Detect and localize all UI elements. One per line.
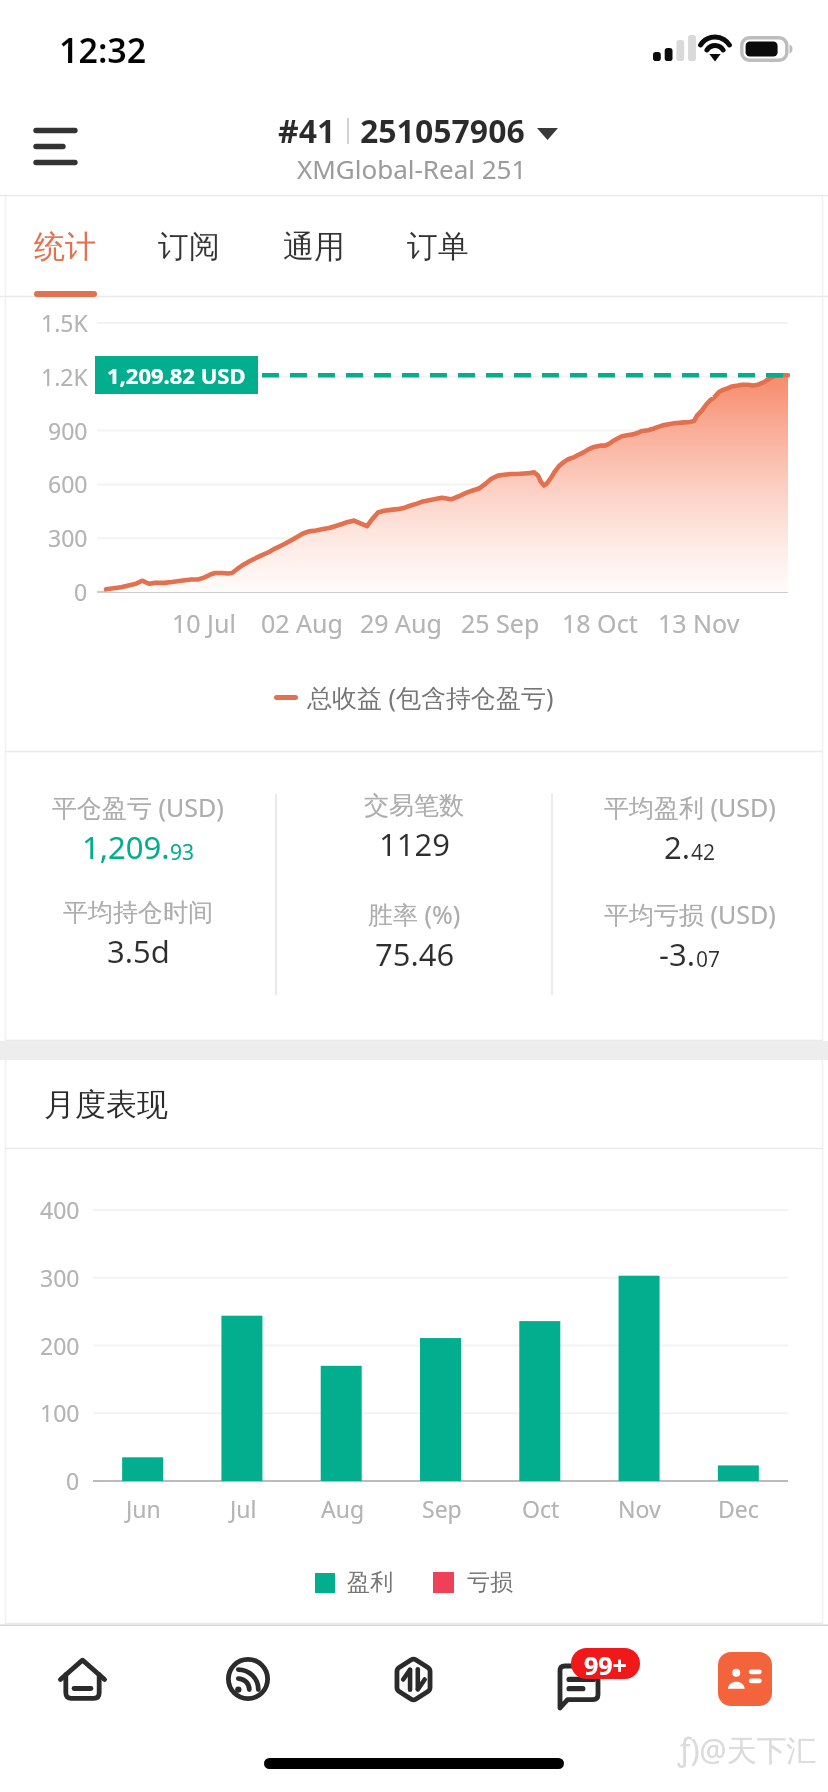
staticText: 251057906 [360, 109, 525, 153]
staticText: 75.46 [375, 933, 455, 975]
staticText: 300 [48, 522, 88, 553]
staticText: Jul [230, 1493, 257, 1524]
staticText: #41 [278, 109, 336, 153]
button[interactable]: Menu [12, 105, 96, 189]
staticText: Aug [321, 1493, 365, 1524]
staticText: 13 Nov [658, 606, 740, 640]
staticText: 12:32 [59, 27, 147, 73]
staticText: 900 [48, 415, 88, 446]
staticText: 平均亏损 (USD) [604, 897, 776, 931]
staticText: Sep [422, 1493, 462, 1524]
staticText: 10 Jul [172, 606, 236, 640]
staticText: Jun [126, 1493, 161, 1524]
staticText: 93 [170, 838, 195, 867]
staticText: 1,209.82 USD [107, 360, 246, 390]
button[interactable]: 统计 [3, 196, 127, 296]
staticText: 2. [664, 826, 691, 868]
button[interactable]: 通用 [252, 196, 376, 296]
staticText: 29 Aug [360, 606, 442, 640]
staticText: 1129 [379, 823, 450, 865]
staticText: 1.2K [41, 361, 88, 392]
staticText: 订单 [407, 227, 469, 266]
staticText: 02 Aug [261, 606, 343, 640]
staticText: 0 [66, 1465, 80, 1496]
staticText: 42 [691, 838, 716, 867]
button[interactable]: Quotes [165, 1626, 330, 1732]
staticText: Dec [718, 1493, 759, 1524]
staticText: 3.5d [107, 930, 170, 972]
staticText: 100 [40, 1397, 80, 1428]
staticText: 总收益 (包含持仓盈亏) [307, 680, 554, 714]
staticText: 400 [40, 1194, 80, 1225]
button[interactable]: 订单 [376, 196, 500, 296]
staticText: ƒ)@天下汇 [678, 1729, 817, 1770]
staticText: -3. [659, 933, 696, 975]
staticText: 25 Sep [461, 606, 540, 640]
staticText: 胜率 (%) [368, 897, 461, 931]
staticText: XMGlobal-Real 251 [297, 151, 527, 186]
staticText: 亏损 [467, 1568, 513, 1597]
staticText: 1.5K [41, 307, 88, 338]
staticText: 订阅 [158, 227, 220, 266]
staticText: 600 [48, 468, 88, 499]
button[interactable]: Account [662, 1626, 828, 1732]
staticText: 平仓盈亏 (USD) [52, 790, 224, 824]
button[interactable]: Messages [496, 1626, 662, 1732]
staticText: 通用 [283, 227, 345, 266]
staticText: 99+ [584, 1648, 627, 1679]
staticText: Oct [522, 1493, 560, 1524]
staticText: 200 [40, 1330, 80, 1361]
staticText: 300 [40, 1262, 80, 1293]
button[interactable]: Home [0, 1626, 165, 1732]
staticText: Nov [618, 1493, 661, 1524]
staticText: 月度表现 [44, 1085, 168, 1124]
staticText: 盈利 [347, 1568, 393, 1597]
button[interactable]: 订阅 [127, 196, 251, 296]
staticText: 统计 [34, 227, 96, 266]
button[interactable]: Trade [330, 1626, 496, 1732]
staticText: 1,209. [82, 826, 170, 868]
staticText: 交易笔数 [364, 790, 464, 821]
staticText: 18 Oct [562, 606, 638, 640]
staticText: 平均盈利 (USD) [604, 790, 776, 824]
staticText: 07 [696, 945, 721, 974]
staticText: 0 [74, 576, 88, 607]
staticText: 平均持仓时间 [63, 897, 213, 928]
